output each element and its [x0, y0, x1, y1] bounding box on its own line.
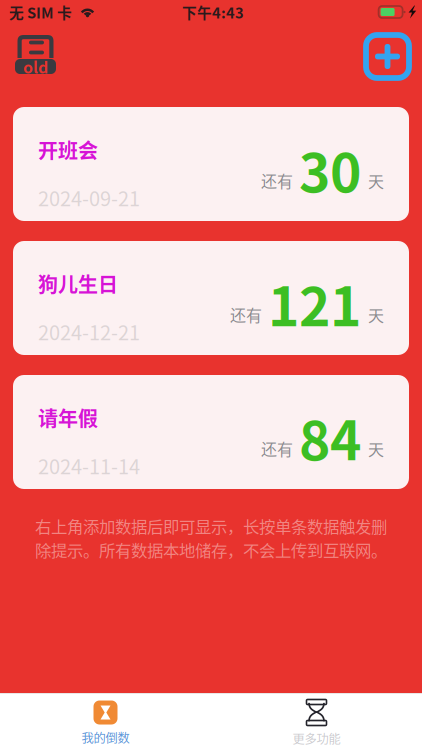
staticText: 还有	[230, 303, 262, 326]
staticText: 2024-09-21	[38, 183, 140, 212]
staticText: 84	[299, 398, 361, 476]
staticText: 我的倒数	[81, 728, 129, 746]
button[interactable]: 请年假	[13, 375, 409, 489]
staticText: old	[23, 55, 48, 78]
staticText: 30	[299, 130, 361, 208]
staticText: 右上角添加数据后即可显示，长按单条数据触发删除提示。所有数据本地储存，不会上传到…	[35, 514, 387, 561]
staticText: 2024-11-14	[38, 451, 140, 480]
button[interactable]: Add countdown	[363, 32, 412, 81]
staticText: 狗儿生日	[38, 269, 118, 298]
staticText: 121	[268, 264, 361, 342]
staticText: 还有	[261, 169, 293, 192]
button[interactable]: 狗儿生日	[13, 241, 409, 355]
button[interactable]: 更多功能	[211, 699, 422, 747]
staticText: 还有	[261, 437, 293, 460]
staticText: 天	[368, 437, 384, 460]
button[interactable]: 开班会	[13, 107, 409, 221]
staticText: 天	[368, 169, 384, 192]
button[interactable]: App logo	[15, 35, 56, 75]
staticText: 无 SIM 卡	[9, 1, 72, 23]
staticText: 下午4:43	[182, 1, 244, 23]
staticText: 更多功能	[292, 729, 340, 747]
staticText: 天	[368, 303, 384, 326]
staticText: 请年假	[38, 403, 98, 432]
staticText: 开班会	[38, 135, 98, 164]
staticText: 2024-12-21	[38, 317, 140, 346]
button[interactable]: 我的倒数	[0, 700, 211, 746]
